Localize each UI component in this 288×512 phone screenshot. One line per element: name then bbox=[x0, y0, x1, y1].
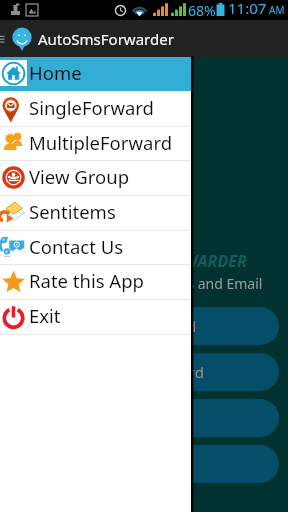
button[interactable]: Sentitems bbox=[0, 196, 191, 231]
staticText: AutoSmsForwarder bbox=[38, 29, 174, 49]
button[interactable]: SingleForward bbox=[0, 92, 191, 127]
staticText: Contact Us bbox=[29, 234, 124, 259]
button[interactable]: Multiple Forward bbox=[8, 353, 279, 391]
staticText: SingleForward bbox=[29, 95, 154, 120]
button[interactable]: Single Forward bbox=[8, 307, 279, 345]
button[interactable]: View Group bbox=[0, 161, 191, 196]
button[interactable]: View Group bbox=[8, 399, 279, 437]
button[interactable]: Rate this App bbox=[0, 265, 191, 300]
button[interactable]: Home bbox=[0, 57, 191, 92]
staticText: 68% bbox=[188, 1, 216, 20]
staticText: Multiple Forward bbox=[84, 362, 204, 382]
staticText: Home bbox=[29, 60, 82, 85]
staticText: Sentitems bbox=[29, 199, 116, 224]
staticText: Rate this App bbox=[29, 268, 144, 293]
staticText: MultipleForward bbox=[29, 130, 173, 155]
staticText: Single Forward bbox=[91, 316, 197, 336]
button[interactable]: Open navigation drawer bbox=[0, 20, 9, 57]
button[interactable]: Sent Items bbox=[8, 445, 279, 483]
staticText: SMS FORWARDER bbox=[118, 250, 247, 272]
button[interactable]: Exit bbox=[0, 300, 191, 335]
staticText: AM bbox=[269, 3, 285, 17]
button[interactable]: Contact Us bbox=[0, 231, 191, 265]
staticText: Exit bbox=[29, 303, 61, 328]
staticText: 11:07 bbox=[228, 0, 267, 18]
staticText: View Group bbox=[29, 164, 130, 189]
button[interactable]: MultipleForward bbox=[0, 127, 191, 161]
staticText: Forward SMS to SMS and Email bbox=[59, 274, 263, 293]
